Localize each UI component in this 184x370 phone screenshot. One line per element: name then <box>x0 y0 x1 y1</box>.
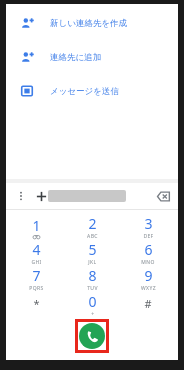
staticText: # <box>144 296 152 311</box>
staticText: DEF <box>143 233 154 240</box>
button[interactable]: メッセージを送信 <box>6 80 178 102</box>
button[interactable]: 連絡先に追加 <box>6 46 178 68</box>
button[interactable]: # <box>122 292 174 318</box>
staticText: TUV <box>87 285 98 292</box>
staticText: WXYZ <box>141 285 156 292</box>
staticText: JKL <box>88 259 97 266</box>
button[interactable]: * <box>10 292 62 318</box>
staticText: ABC <box>87 233 98 240</box>
button[interactable]: 新しい連絡先を作成 <box>6 12 178 34</box>
button[interactable]: Call <box>79 323 105 349</box>
button[interactable]: 6 <box>122 240 174 266</box>
button[interactable]: 0 <box>66 292 118 318</box>
staticText: + <box>91 311 95 318</box>
button[interactable]: 9 <box>122 266 174 292</box>
button[interactable]: 1 <box>10 214 62 240</box>
button[interactable]: 2 <box>66 214 118 240</box>
staticText: 連絡先に追加 <box>50 52 102 63</box>
staticText: 8 <box>88 266 97 285</box>
staticText: 2 <box>88 214 97 233</box>
staticText: 5 <box>88 240 97 259</box>
button[interactable]: More options <box>12 187 30 205</box>
button[interactable]: 7 <box>10 266 62 292</box>
button[interactable]: Delete <box>154 187 172 205</box>
staticText: * <box>33 296 40 311</box>
button[interactable]: 8 <box>66 266 118 292</box>
staticText: 9 <box>144 266 153 285</box>
staticText: メッセージを送信 <box>50 86 119 97</box>
staticText: MNO <box>141 259 155 266</box>
staticText: GHI <box>31 259 42 266</box>
staticText: PQRS <box>29 285 44 292</box>
button[interactable]: 3 <box>122 214 174 240</box>
staticText: 1 <box>32 216 41 235</box>
staticText: 7 <box>32 266 41 285</box>
staticText: 3 <box>144 214 153 233</box>
staticText: 4 <box>32 240 41 259</box>
button[interactable]: 4 <box>10 240 62 266</box>
button[interactable]: 5 <box>66 240 118 266</box>
staticText: 6 <box>144 240 153 259</box>
staticText: 0 <box>88 292 97 311</box>
staticText: 新しい連絡先を作成 <box>50 18 128 29</box>
